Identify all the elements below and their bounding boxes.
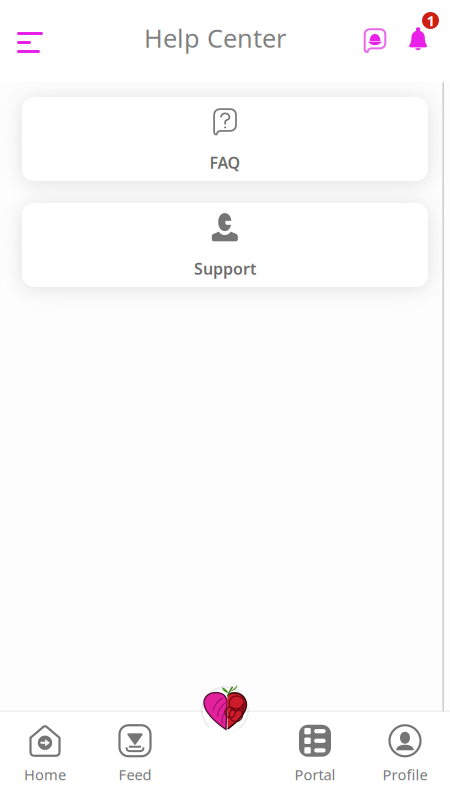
staticText: 1 (426, 11, 434, 30)
staticText: Home (24, 765, 66, 784)
staticText: Support (194, 258, 256, 279)
button[interactable]: Home (0, 712, 90, 800)
button[interactable]: Feed (90, 712, 180, 800)
staticText: Feed (118, 765, 151, 784)
button[interactable]: Profile (360, 712, 450, 800)
button[interactable]: Support (22, 203, 428, 287)
button[interactable]: Menu (0, 19, 61, 63)
button[interactable]: Support chat (349, 16, 389, 66)
button[interactable]: FAQ (22, 97, 428, 181)
button[interactable]: Notifications (399, 16, 437, 66)
button[interactable]: Portal (270, 712, 360, 800)
staticText: Portal (294, 765, 335, 784)
staticText: Help Center (144, 21, 286, 55)
staticText: Profile (382, 765, 427, 784)
staticText: FAQ (209, 152, 240, 173)
